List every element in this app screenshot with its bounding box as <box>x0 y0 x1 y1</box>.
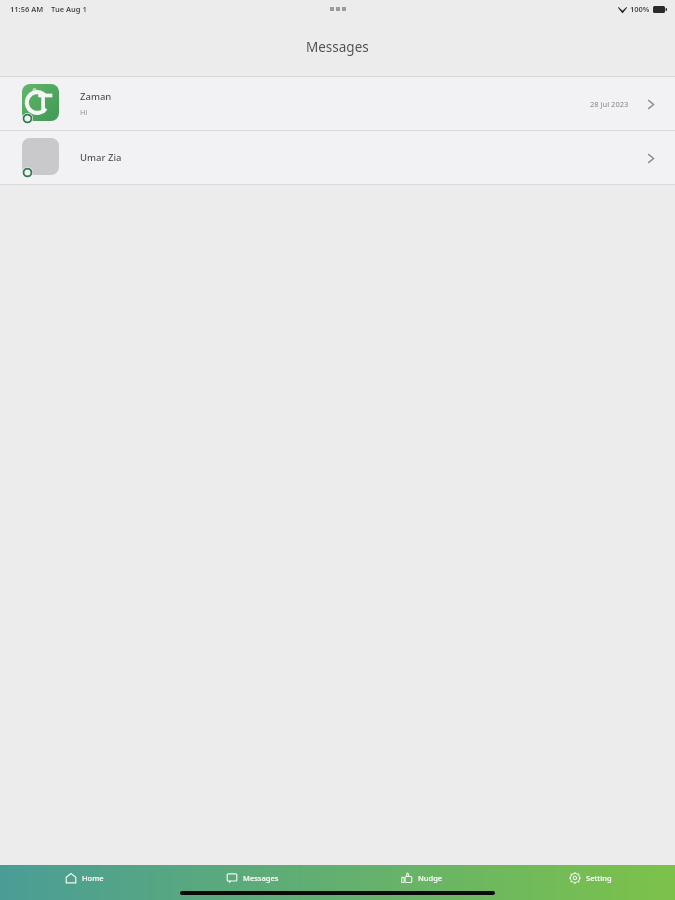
staticText: Messages <box>306 38 369 56</box>
staticText: Umar Zia <box>80 151 122 164</box>
staticText: Nudge <box>418 873 443 883</box>
staticText: Setting <box>586 873 612 883</box>
button[interactable]: Zaman <box>0 77 675 130</box>
other: Open conversation <box>639 93 661 115</box>
staticText: 28 Jul 2023 <box>590 99 629 109</box>
other: Open conversation <box>639 147 661 169</box>
staticText: Hi <box>80 107 88 117</box>
staticText: Home <box>82 873 104 883</box>
staticText: 100% <box>630 4 650 14</box>
staticText: 11:56 AM <box>10 4 44 14</box>
button[interactable]: Umar Zia <box>0 131 675 184</box>
button[interactable]: Messages <box>168 872 337 884</box>
staticText: Messages <box>243 873 279 883</box>
staticText: Tue Aug 1 <box>51 4 87 14</box>
button[interactable]: Nudge <box>337 872 506 884</box>
staticText: Zaman <box>80 90 112 103</box>
button[interactable]: Home <box>0 872 168 884</box>
button[interactable]: Setting <box>506 872 675 884</box>
